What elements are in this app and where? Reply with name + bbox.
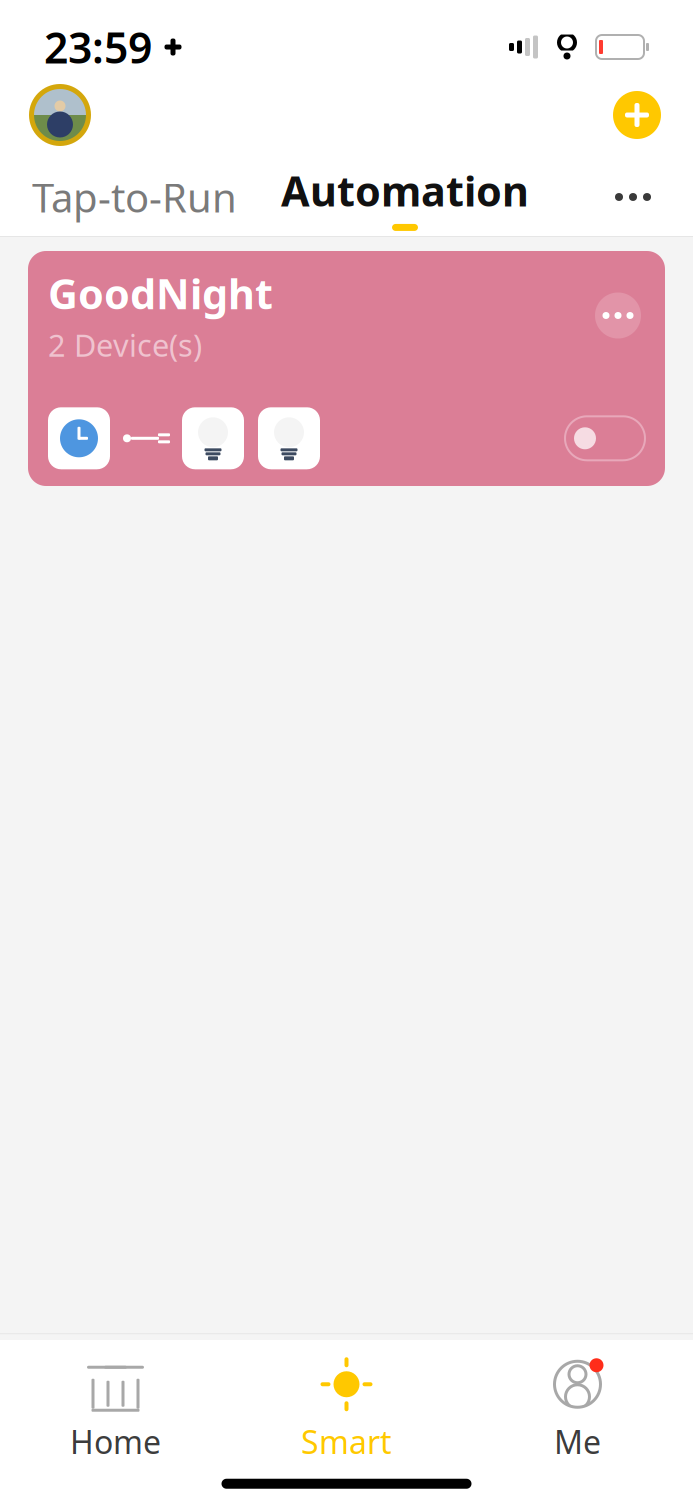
button[interactable]: GoodNight [28,251,665,486]
button[interactable]: Scene options [591,288,645,342]
staticText: Me [554,1420,601,1463]
button[interactable]: Home [0,1348,231,1471]
staticText: Smart [301,1420,392,1463]
staticText: GoodNight [48,266,273,321]
button[interactable]: Automation [277,163,533,231]
button[interactable]: Add [607,85,667,145]
button[interactable]: Enable automation [565,416,645,460]
staticText: 23:59 [44,19,152,75]
button[interactable]: Profile [26,81,94,149]
staticText: 2 Device(s) [48,325,202,365]
button[interactable]: More options [601,179,665,215]
button[interactable]: Me [462,1348,693,1471]
staticText: Home [70,1420,161,1463]
button[interactable]: Smart [231,1348,462,1471]
staticText: Automation [281,163,529,218]
staticText: Tap-to-Run [32,170,237,223]
button[interactable]: Tap-to-Run [28,160,241,233]
